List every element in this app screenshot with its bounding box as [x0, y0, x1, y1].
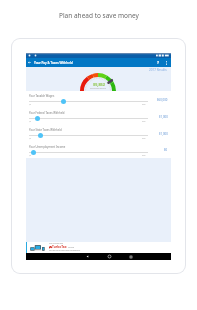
- button[interactable]: Your Unemployment Income: [26, 142, 171, 158]
- staticText: $0: [29, 137, 31, 139]
- staticText: Your Federal Taxes Withheld: [29, 111, 65, 115]
- button[interactable]: Back: [76, 253, 98, 260]
- button[interactable]: Recent apps: [120, 253, 142, 260]
- staticText: max: [142, 154, 146, 156]
- staticText: max: [142, 120, 146, 122]
- staticText: TurboTax: [52, 245, 67, 249]
- staticText: 2017 Results: [149, 68, 167, 72]
- staticText: Plan ahead to save money: [59, 11, 139, 20]
- staticText: Your Pay & Taxes Withheld: [34, 61, 73, 65]
- staticText: $0: [164, 148, 168, 152]
- staticText: Online: [68, 246, 75, 249]
- button[interactable]: More options: [162, 58, 170, 67]
- staticText: $0: [29, 154, 31, 156]
- staticText: $5,852: [93, 82, 105, 87]
- staticText: and file your taxes with confidence.: [49, 249, 81, 252]
- button[interactable]: Help: [154, 58, 162, 67]
- staticText: max: [142, 103, 146, 105]
- button[interactable]: Your Federal Taxes Withheld: [26, 108, 171, 125]
- staticText: ESTIMATED REFUND: [90, 87, 107, 89]
- staticText: Start for free. Learn more: [49, 252, 72, 254]
- staticText: $0: [29, 120, 31, 122]
- button[interactable]: Navigate up: [26, 58, 33, 67]
- staticText: $60,000: [157, 98, 168, 102]
- button[interactable]: Your State Taxes Withheld: [26, 125, 171, 142]
- staticText: max: [142, 137, 146, 139]
- staticText: Your Unemployment Income: [29, 145, 66, 149]
- staticText: $1,000: [159, 115, 168, 119]
- staticText: $0: [29, 103, 31, 105]
- button[interactable]: Home: [98, 253, 120, 260]
- staticText: $1,000: [159, 132, 168, 136]
- button[interactable]: Your Taxable Wages: [26, 91, 171, 108]
- staticText: Get started with: [49, 242, 64, 245]
- staticText: ?: [157, 60, 159, 66]
- staticText: Your Taxable Wages: [29, 94, 55, 98]
- staticText: Your State Taxes Withheld: [29, 128, 62, 132]
